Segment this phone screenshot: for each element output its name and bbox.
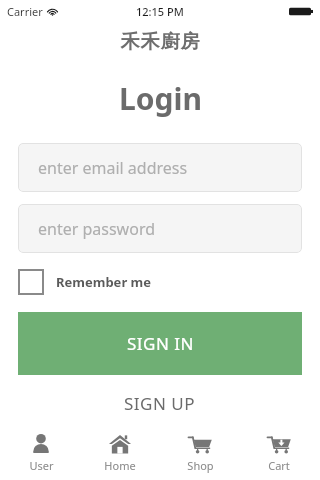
button[interactable]: Home — [81, 432, 159, 473]
staticText: 禾禾廚房 — [120, 30, 200, 54]
button[interactable]: enter password — [18, 204, 302, 253]
staticText: enter password — [38, 218, 156, 240]
button[interactable]: Cart — [240, 432, 318, 473]
staticText: SIGN IN — [127, 332, 194, 355]
button[interactable]: Remember me — [18, 269, 152, 295]
staticText: Remember me — [56, 273, 152, 291]
button[interactable]: SIGN UP — [0, 392, 320, 415]
staticText: User — [29, 458, 54, 473]
staticText: SIGN UP — [124, 392, 196, 415]
button[interactable]: User — [2, 432, 80, 473]
staticText: enter email address — [38, 157, 188, 179]
button[interactable]: enter email address — [18, 143, 302, 192]
staticText: Shop — [187, 458, 214, 473]
staticText: Carrier — [7, 4, 43, 19]
staticText: 12:15 PM — [136, 4, 184, 19]
button[interactable]: Shop — [161, 432, 239, 473]
staticText: Login — [119, 78, 202, 119]
staticText: Cart — [268, 458, 290, 473]
button[interactable]: SIGN IN — [18, 312, 302, 375]
staticText: Home — [104, 458, 136, 473]
